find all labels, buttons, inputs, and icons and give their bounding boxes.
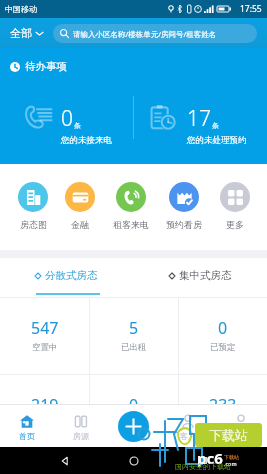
staticText: 维修中 [32,419,58,430]
button[interactable]: 我的 [214,404,267,447]
staticText: 中国移动 [5,4,37,14]
button[interactable]: 客户 [161,404,214,447]
staticText: 条 [212,121,219,130]
staticText: 0 [218,317,228,339]
button[interactable]: 预约看房 [166,164,202,250]
staticText: 0 [61,104,73,133]
staticText: 空置中 [32,342,58,353]
staticText: pc6 [197,448,223,468]
staticText: 分散式房态 [45,269,98,282]
staticText: 条 [74,121,81,130]
button[interactable]: 233 [179,375,267,451]
staticText: 租客来电 [113,219,149,230]
staticText: 未发布 [210,419,236,430]
staticText: 已预定 [210,342,236,353]
button[interactable] [133,96,267,164]
button[interactable]: 更多 [220,164,250,250]
button[interactable]: 5 [90,298,178,374]
button[interactable]: 集中式房态 [133,258,267,297]
staticText: 219 [31,394,59,416]
staticText: 您的未接来电 [61,135,112,146]
button[interactable]: 0 [90,375,178,451]
staticText: 您的未处理预约 [187,135,247,146]
button[interactable]: 首页 [0,404,54,447]
staticText: 0 [129,394,139,416]
button[interactable]: 请输入小区名称/楼栋单元/房间号/租客姓名 [53,24,257,43]
button[interactable]: 房态图 [18,164,48,250]
button[interactable]: 金融 [65,164,95,250]
button[interactable]: 219 [0,375,89,451]
button[interactable]: 0 [179,298,267,374]
staticText: 国内安全的下载站 [175,462,231,471]
button[interactable]: 547 [0,298,89,374]
staticText: 我的 [233,431,249,441]
button[interactable]: 房源 [54,404,108,447]
staticText: 已到期 [121,419,147,430]
staticText: 17 [187,104,211,133]
button[interactable]: Add [118,411,149,442]
staticText: 17:55 [240,3,262,15]
staticText: 下载站 [209,427,248,443]
staticText: 请输入小区名称/楼栋单元/房间号/租客姓名 [73,29,217,39]
staticText: 547 [31,317,59,339]
button[interactable]: Back [60,456,70,466]
staticText: 房源 [73,431,89,441]
button[interactable]: Home [129,456,139,466]
button[interactable]: 租客来电 [113,164,149,250]
button[interactable]: 全部 [0,18,53,48]
staticText: 集中式房态 [179,269,232,282]
staticText: 预约看房 [166,219,202,230]
staticText: 全部 [10,26,32,40]
staticText: 下载站 [224,454,239,460]
button[interactable]: Recents [199,456,208,465]
staticText: .com [224,460,237,467]
staticText: 已出租 [121,342,147,353]
staticText: 金融 [71,219,89,230]
staticText: 房态图 [20,219,47,230]
staticText: 客户 [180,431,196,441]
staticText: 更多 [226,219,244,230]
staticText: 首页 [19,431,35,441]
staticText: 233 [209,394,237,416]
button[interactable]: 分散式房态 [0,258,133,297]
staticText: 5 [129,317,139,339]
staticText: 待办事项 [25,60,67,73]
button[interactable] [0,96,133,164]
